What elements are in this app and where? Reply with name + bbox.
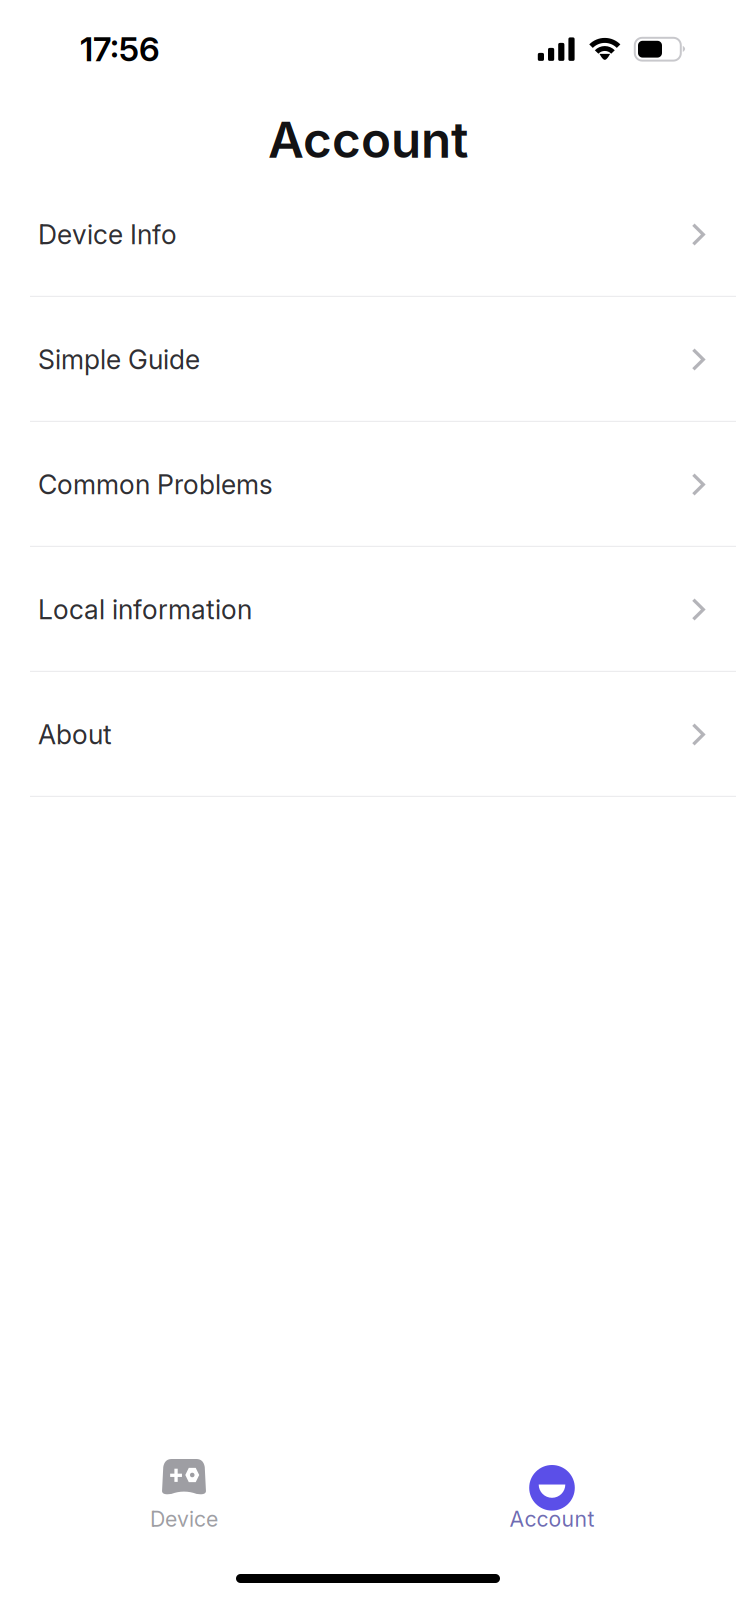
staticText: About: [38, 718, 112, 751]
button[interactable]: Simple Guide: [0, 297, 736, 422]
staticText: 17:56: [80, 29, 160, 69]
button[interactable]: Local information: [0, 547, 736, 672]
button[interactable]: Device: [0, 1454, 368, 1544]
button[interactable]: Device Info: [0, 172, 736, 297]
staticText: Local information: [38, 593, 252, 626]
button[interactable]: Account: [368, 1454, 736, 1544]
staticText: Device: [150, 1506, 218, 1532]
staticText: Account: [509, 1506, 594, 1532]
button[interactable]: About: [0, 672, 736, 797]
staticText: Account: [268, 110, 468, 170]
button[interactable]: Common Problems: [0, 422, 736, 547]
staticText: Device Info: [38, 218, 177, 251]
staticText: Simple Guide: [38, 343, 200, 376]
staticText: Common Problems: [38, 468, 273, 501]
